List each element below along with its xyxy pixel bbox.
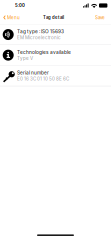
staticText: Type V	[17, 55, 33, 61]
button[interactable]: Tag type : ISO 15693	[0, 24, 111, 45]
staticText: Save	[95, 15, 105, 20]
staticText: EM Microelectronic	[17, 35, 61, 40]
staticText: Technologies available	[17, 49, 71, 55]
staticText: Serial number	[17, 70, 49, 76]
button[interactable]: Menu	[0, 13, 20, 22]
staticText: 5:00	[15, 3, 25, 8]
staticText: Tag detail	[43, 15, 64, 20]
staticText: Menu	[7, 15, 20, 20]
staticText: Tag type : ISO 15693	[17, 29, 64, 34]
staticText: E0 16 3C 01 10 50 8E 6C	[17, 76, 69, 82]
button[interactable]: Serial number	[0, 66, 111, 86]
button[interactable]: Save	[95, 13, 111, 22]
button[interactable]: Technologies available	[0, 45, 111, 66]
